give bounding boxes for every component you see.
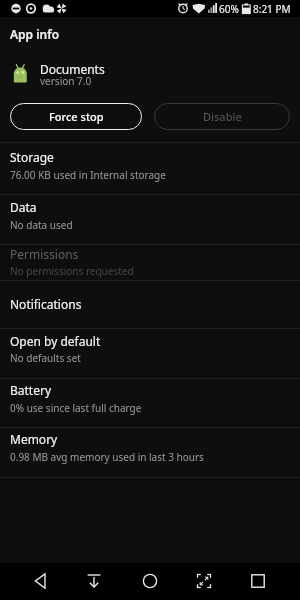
staticText: version 7.0 xyxy=(40,74,92,88)
staticText: Memory xyxy=(10,431,58,447)
button[interactable]: Open by default xyxy=(0,327,300,369)
button[interactable]: Notifications xyxy=(0,290,300,316)
staticText: Force stop xyxy=(49,109,104,124)
staticText: 0% use since last full charge xyxy=(10,401,142,415)
button[interactable] xyxy=(25,565,57,597)
button[interactable]: Permissions xyxy=(0,240,300,282)
staticText: Documents xyxy=(40,61,105,77)
staticText: App info xyxy=(10,26,60,42)
staticText: 8:21 PM xyxy=(253,2,291,16)
button[interactable]: Force stop xyxy=(10,103,142,130)
staticText: 76.00 KB used in Internal storage xyxy=(10,168,166,182)
staticText: Permissions xyxy=(10,246,79,262)
button[interactable]: Disable xyxy=(154,103,290,130)
staticText: 60% xyxy=(219,2,239,16)
staticText: Open by default xyxy=(10,333,101,349)
button[interactable] xyxy=(188,565,220,597)
staticText: No data used xyxy=(10,218,73,232)
button[interactable]: Memory xyxy=(0,425,300,467)
button[interactable] xyxy=(78,565,110,597)
staticText: Storage xyxy=(10,149,54,165)
staticText: 0.98 MB avg memory used in last 3 hours xyxy=(10,450,204,464)
staticText: Notifications xyxy=(10,296,82,312)
button[interactable]: Storage xyxy=(0,143,300,185)
button[interactable] xyxy=(242,565,274,597)
staticText: Battery xyxy=(10,382,52,398)
staticText: Data xyxy=(10,199,37,215)
staticText: Disable xyxy=(203,109,242,124)
button[interactable]: Battery xyxy=(0,376,300,418)
staticText: No permissions requested xyxy=(10,264,134,278)
staticText: No defaults set xyxy=(10,351,81,365)
button[interactable]: Data xyxy=(0,193,300,235)
button[interactable] xyxy=(134,565,166,597)
